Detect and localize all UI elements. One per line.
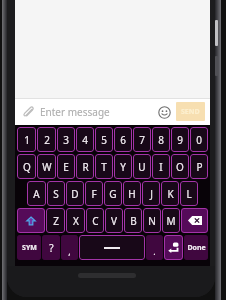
staticText: I [159,160,163,174]
button[interactable]: . [146,235,163,260]
staticText: X [73,214,79,228]
staticText: 9 [177,133,183,147]
staticText: 3 [63,133,69,147]
button[interactable]: Enter [164,235,183,260]
staticText: Enter message [40,105,110,119]
staticText: W [42,160,52,174]
button[interactable]: A [27,181,46,206]
staticText: L [186,187,192,201]
button[interactable]: D [66,181,84,206]
button[interactable]: 1 [17,127,36,152]
button[interactable]: Enter message [40,98,155,125]
button[interactable]: M [162,208,180,233]
staticText: O [176,160,184,174]
button[interactable]: T [95,154,113,179]
staticText: , [68,245,71,257]
staticText: C [92,214,99,228]
staticText: . [153,245,156,257]
staticText: M [166,214,176,228]
button[interactable]: S [47,181,65,206]
button[interactable]: ? [42,235,60,260]
button[interactable]: L [180,181,198,206]
button[interactable]: Y [114,154,132,179]
button[interactable]: Emoji [155,103,173,121]
staticText: Done [187,243,206,253]
button[interactable]: P [190,154,208,179]
button[interactable]: Attach [20,104,36,120]
staticText: J [150,187,153,201]
staticText: D [71,187,79,201]
button[interactable]: U [133,154,151,179]
button[interactable]: H [123,181,141,206]
staticText: U [138,160,146,174]
button[interactable]: R [76,154,94,179]
staticText: 6 [120,133,126,147]
button[interactable]: Shift [17,208,45,233]
button[interactable]: N [143,208,161,233]
button[interactable]: J [142,181,160,206]
staticText: E [63,160,69,174]
button[interactable]: , [61,235,78,260]
staticText: N [148,214,156,228]
button[interactable]: I [152,154,170,179]
staticText: 1 [24,133,30,147]
button[interactable]: Q [17,154,36,179]
staticText: Q [23,160,31,174]
button[interactable]: 5 [95,127,113,152]
button[interactable]: Z [46,208,65,233]
button[interactable]: SEND [176,102,205,121]
staticText: T [101,160,107,174]
button[interactable]: SYM [17,235,41,260]
button[interactable]: E [57,154,75,179]
button[interactable]: 9 [171,127,189,152]
button[interactable]: 2 [37,127,56,152]
staticText: K [167,187,174,201]
staticText: H [128,187,136,201]
staticText: P [196,160,203,174]
button[interactable]: W [37,154,56,179]
staticText: V [111,214,117,228]
button[interactable]: F [85,181,103,206]
staticText: G [109,187,117,201]
button[interactable]: K [161,181,179,206]
button[interactable]: 0 [190,127,208,152]
button[interactable]: 7 [133,127,151,152]
button[interactable]: 3 [57,127,75,152]
staticText: 5 [101,133,107,147]
button[interactable]: O [171,154,189,179]
button[interactable]: X [66,208,85,233]
staticText: 8 [158,133,164,147]
staticText: 0 [196,133,202,147]
button[interactable]: Done [184,235,208,260]
button[interactable]: 6 [114,127,132,152]
staticText: SEND [181,107,200,117]
button[interactable]: Backspace [181,208,208,233]
button[interactable]: G [104,181,122,206]
staticText: Y [120,160,126,174]
staticText: 2 [44,133,50,147]
staticText: R [82,160,89,174]
staticText: ? [49,241,54,255]
staticText: 7 [139,133,145,147]
button[interactable]: 8 [152,127,170,152]
staticText: Z [53,214,59,228]
staticText: SYM [22,243,37,253]
staticText: A [33,187,40,201]
button[interactable]: Space [79,235,145,260]
button[interactable]: B [124,208,142,233]
staticText: 4 [82,133,88,147]
staticText: F [91,187,97,201]
staticText: B [130,214,137,228]
button[interactable]: V [105,208,123,233]
button[interactable]: 4 [76,127,94,152]
staticText: S [53,187,59,201]
button[interactable]: C [86,208,104,233]
